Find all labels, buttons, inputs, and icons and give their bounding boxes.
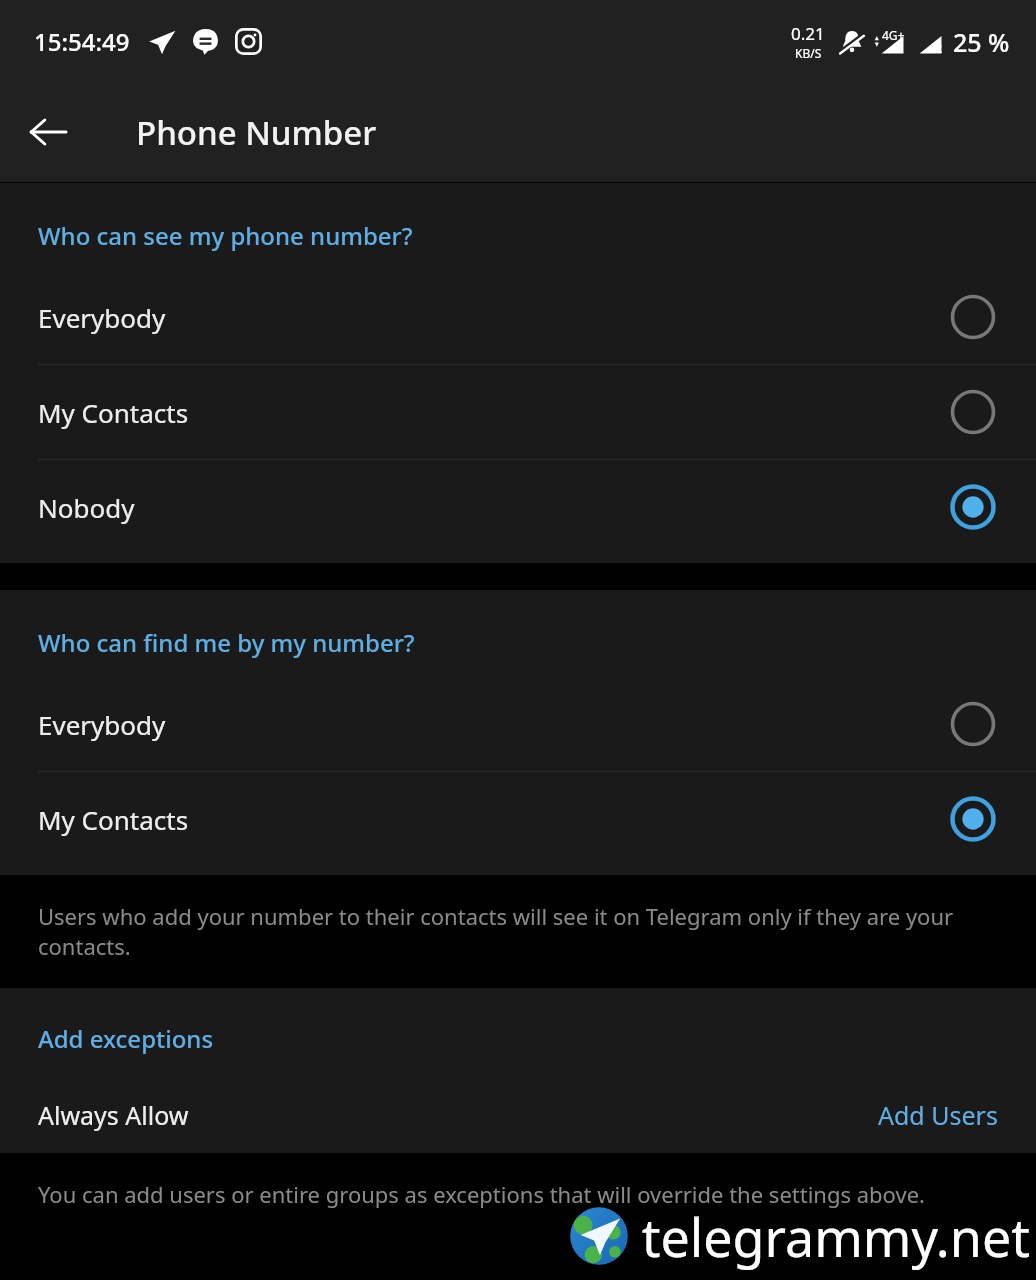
button[interactable]: Nobody	[0, 460, 1036, 554]
staticText: 4G+	[882, 27, 905, 43]
staticText: Add Users	[878, 1098, 998, 1132]
staticText: Who can find me by my number?	[38, 626, 415, 659]
staticText: Add exceptions	[38, 1022, 214, 1055]
staticText: Phone Number	[136, 110, 377, 155]
button[interactable]: My Contacts	[0, 365, 1036, 459]
staticText: 25 %	[953, 25, 1010, 59]
staticText: Everybody	[38, 300, 166, 335]
staticText: Who can see my phone number?	[38, 219, 413, 252]
staticText: Always Allow	[38, 1098, 189, 1132]
staticText: R	[934, 39, 943, 57]
staticText: My Contacts	[38, 395, 189, 430]
staticText: KB/S	[795, 45, 822, 61]
staticText: You can add users or entire groups as ex…	[38, 1179, 925, 1209]
button[interactable]: Always Allow	[0, 1077, 1036, 1153]
staticText: 15:54:49	[34, 25, 130, 58]
staticText: Users who add your number to their conta…	[38, 901, 966, 962]
staticText: 0.21	[791, 22, 825, 45]
button[interactable]: Back	[18, 102, 78, 162]
staticText: My Contacts	[38, 802, 189, 837]
button[interactable]: My Contacts	[0, 772, 1036, 866]
staticText: Everybody	[38, 707, 166, 742]
staticText: Nobody	[38, 490, 135, 525]
button[interactable]: Everybody	[0, 270, 1036, 364]
button[interactable]: Everybody	[0, 677, 1036, 771]
staticText: telegrammy.net	[641, 1201, 1030, 1272]
